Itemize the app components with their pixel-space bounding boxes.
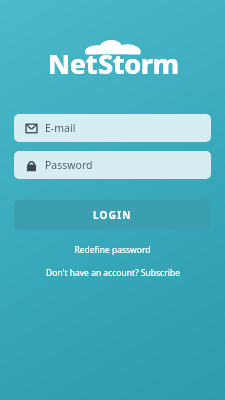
staticText: Net [48,45,98,82]
staticText: Redefine password [74,244,151,256]
button[interactable]: E-mail [14,114,211,142]
button[interactable]: Password [14,151,211,179]
button[interactable]: Redefine password [68,242,157,258]
staticText: LOGIN [93,208,132,222]
button[interactable]: LOGIN [14,200,211,230]
staticText: Don't have an account? Subscribe [46,267,180,279]
staticText: Password [45,158,93,172]
button[interactable]: Don't have an account? Subscribe [40,265,186,281]
staticText: Storm [98,45,179,82]
staticText: E-mail [45,121,76,135]
